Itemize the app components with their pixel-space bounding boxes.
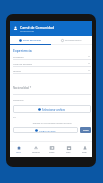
- staticText: Datos personales: [23, 39, 42, 42]
- staticText: Seleccionar archivo: [42, 108, 66, 111]
- button[interactable]: Datos personales: [10, 36, 51, 44]
- button[interactable]: Documentación: [51, 36, 92, 44]
- staticText: Solicitud: [32, 151, 40, 154]
- staticText: Perfil: [82, 151, 87, 154]
- button[interactable]: Cargar archivo: [13, 127, 78, 133]
- other: Perfil: [13, 26, 18, 31]
- staticText: Nivel de estudios: [13, 62, 88, 65]
- button[interactable]: Carné: [44, 142, 60, 157]
- staticText: Subir: [83, 129, 89, 132]
- staticText: Experiencia: [13, 48, 32, 53]
- button[interactable]: Idioma: [13, 69, 91, 76]
- button[interactable]: Seleccionar archivo: [13, 105, 91, 113]
- button[interactable]: Solicitud: [27, 142, 44, 157]
- staticText: Citas: [66, 151, 71, 154]
- button[interactable]: Nivel de estudios: [13, 62, 91, 69]
- staticText: Nacionalidad *: [13, 86, 32, 90]
- button[interactable]: Profesión: [13, 55, 91, 62]
- staticText: MI SOLICITUD: [20, 30, 35, 33]
- staticText: Todavía no ha cargado ningún archivo: [13, 122, 91, 125]
- staticText: Profesión: [13, 55, 88, 58]
- staticText: Inicio: [16, 151, 21, 154]
- staticText: Idioma: [13, 69, 88, 72]
- staticText: Cargar archivo: [39, 129, 56, 132]
- button[interactable]: Perfil: [10, 21, 92, 36]
- staticText: Carné de Comunidad: [20, 25, 55, 30]
- staticText: Documentación: [65, 39, 82, 42]
- button[interactable]: Subir: [80, 127, 91, 133]
- staticText: Pasaporte: [13, 99, 24, 102]
- staticText: Carné: [49, 151, 55, 154]
- button[interactable]: Perfil: [76, 142, 92, 157]
- button[interactable]: Inicio: [10, 142, 27, 157]
- button[interactable]: Citas: [60, 142, 76, 157]
- staticText: CV: [13, 116, 16, 119]
